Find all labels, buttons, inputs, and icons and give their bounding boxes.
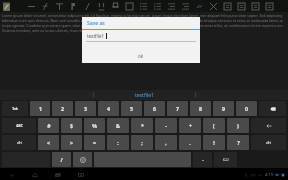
button[interactable]: 8 bbox=[190, 101, 211, 116]
button[interactable]: 0 bbox=[236, 101, 257, 116]
staticText: 3 bbox=[84, 105, 87, 112]
staticText: : bbox=[117, 139, 119, 146]
button[interactable]: 6 bbox=[144, 101, 165, 116]
staticText: > bbox=[70, 139, 73, 146]
button[interactable]: 3 bbox=[75, 101, 96, 116]
staticText: 5 bbox=[130, 105, 133, 112]
button[interactable]: Outdent bbox=[178, 0, 192, 12]
button[interactable]: Screenshot bbox=[75, 169, 86, 180]
button[interactable]: Redo bbox=[38, 0, 52, 12]
button[interactable]: Undo bbox=[24, 0, 38, 12]
button[interactable]: Numbered list bbox=[150, 0, 164, 12]
button[interactable]: 1 bbox=[30, 101, 50, 116]
button[interactable]: Align right bbox=[248, 0, 262, 12]
staticText: - bbox=[165, 122, 167, 129]
staticText: / bbox=[60, 156, 63, 163]
button[interactable]: ! bbox=[203, 135, 225, 150]
staticText: 7 bbox=[176, 105, 179, 112]
button[interactable]: Image bbox=[122, 0, 136, 12]
staticText: + bbox=[189, 122, 192, 129]
button[interactable]: > bbox=[61, 135, 82, 150]
button[interactable]: / bbox=[52, 152, 71, 167]
button[interactable]: · bbox=[193, 152, 212, 167]
staticText: . bbox=[189, 139, 191, 146]
staticText: 0 bbox=[245, 105, 248, 112]
staticText: textfile1 bbox=[87, 33, 105, 39]
button[interactable]: * bbox=[131, 118, 153, 133]
button[interactable]: : bbox=[107, 135, 129, 150]
button[interactable]: Underline bbox=[94, 0, 108, 12]
staticText: 1 bbox=[39, 105, 42, 112]
button[interactable]: 7 bbox=[167, 101, 188, 116]
button[interactable]: Italic bbox=[80, 0, 94, 12]
button[interactable]: 5 bbox=[121, 101, 142, 116]
button[interactable]: Tab bbox=[2, 101, 28, 116]
button[interactable]: . bbox=[179, 135, 201, 150]
button[interactable]: - bbox=[155, 118, 177, 133]
button[interactable]: Fill bbox=[262, 0, 276, 12]
button[interactable]: ) bbox=[227, 118, 249, 133]
staticText: * bbox=[141, 122, 144, 129]
staticText: 8 bbox=[199, 105, 202, 112]
button[interactable]: Back bbox=[6, 169, 17, 180]
button[interactable]: ? bbox=[227, 135, 249, 150]
staticText: =\< bbox=[266, 141, 271, 145]
staticText: 4:19 bbox=[265, 172, 273, 177]
staticText: ; bbox=[141, 139, 143, 146]
button[interactable]: Home bbox=[29, 169, 40, 180]
button[interactable]: = bbox=[84, 135, 105, 150]
button[interactable]: App bbox=[1, 1, 12, 12]
button[interactable]: Recents bbox=[52, 169, 63, 180]
button[interactable]: 9 bbox=[213, 101, 234, 116]
button[interactable]: Enter bbox=[251, 118, 286, 133]
button[interactable]: Link bbox=[192, 0, 206, 12]
button[interactable]: Font size bbox=[52, 0, 66, 12]
staticText: ? bbox=[237, 139, 240, 146]
button[interactable]: 2 bbox=[52, 101, 73, 116]
button[interactable]: =\< bbox=[2, 135, 36, 150]
button[interactable]: Strikethrough bbox=[108, 0, 122, 12]
button[interactable]: ; bbox=[131, 135, 153, 150]
button[interactable]: textfile1 bbox=[82, 30, 200, 41]
staticText: ! bbox=[213, 139, 215, 146]
button[interactable]: ABC bbox=[2, 118, 36, 133]
button[interactable]: Align left bbox=[220, 0, 234, 12]
button[interactable]: & bbox=[107, 118, 129, 133]
staticText: Lorem ipsum dolor sit amet, consectetur … bbox=[2, 13, 286, 33]
button[interactable]: < bbox=[38, 135, 59, 150]
button[interactable]: =\< bbox=[251, 135, 286, 150]
button[interactable]: # bbox=[38, 118, 59, 133]
button[interactable]: Indent bbox=[164, 0, 178, 12]
staticText: , bbox=[165, 139, 167, 146]
button[interactable]: Align center bbox=[234, 0, 248, 12]
button[interactable]: 4 bbox=[98, 101, 119, 116]
button[interactable]: Hide keyboard bbox=[214, 152, 237, 167]
staticText: < bbox=[47, 139, 50, 146]
staticText: = bbox=[93, 139, 96, 146]
button[interactable]: Clear bbox=[206, 0, 220, 12]
staticText: textfile1 bbox=[135, 92, 154, 99]
staticText: 4 bbox=[107, 105, 110, 112]
button[interactable]: $ bbox=[61, 118, 82, 133]
button[interactable]: ( bbox=[203, 118, 225, 133]
button[interactable]: ok bbox=[82, 50, 200, 62]
button[interactable]: Bold bbox=[66, 0, 80, 12]
button[interactable]: Backspace bbox=[259, 101, 286, 116]
button[interactable]: Bullet list bbox=[136, 0, 150, 12]
staticText: Save as bbox=[87, 20, 105, 27]
staticText: $ bbox=[70, 122, 73, 129]
staticText: % bbox=[92, 122, 97, 129]
button[interactable]: , bbox=[155, 135, 177, 150]
staticText: Tab bbox=[12, 107, 18, 111]
button[interactable]: + bbox=[179, 118, 201, 133]
button[interactable]: Emoji bbox=[73, 152, 92, 167]
staticText: 2 bbox=[61, 105, 64, 112]
staticText: # bbox=[47, 122, 51, 129]
button[interactable]: % bbox=[84, 118, 105, 133]
staticText: 9 bbox=[222, 105, 225, 112]
staticText: ABC bbox=[16, 124, 23, 128]
button[interactable]: textfile1 bbox=[94, 90, 195, 100]
